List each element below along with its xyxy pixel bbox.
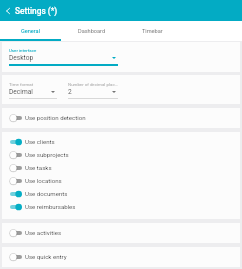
button[interactable]: Use documents xyxy=(2,187,240,200)
staticText: Use quick entry xyxy=(25,253,67,260)
staticText: Use activities xyxy=(25,229,62,236)
staticText: Desktop xyxy=(9,54,34,62)
staticText: Dashboard xyxy=(78,28,106,35)
staticText: Use reimbursables xyxy=(25,203,76,210)
button[interactable]: Use reimbursables xyxy=(2,200,240,213)
staticText: Timebar xyxy=(142,28,163,35)
staticText: Use tasks xyxy=(25,164,52,171)
button[interactable]: Use position detection xyxy=(2,111,240,124)
button[interactable]: Use activities xyxy=(2,226,240,239)
button[interactable]: Use tasks xyxy=(2,161,240,174)
button[interactable]: User interface xyxy=(2,42,118,72)
button[interactable]: Number of decimal plac... xyxy=(61,75,118,104)
staticText: General xyxy=(21,28,41,35)
button[interactable]: Timebar xyxy=(122,21,183,41)
staticText: 2 xyxy=(68,88,72,96)
staticText: Use subprojects xyxy=(25,151,69,158)
button[interactable]: Time format xyxy=(2,75,57,104)
button[interactable]: General xyxy=(0,21,61,41)
staticText: Time format xyxy=(9,82,34,87)
button[interactable]: Use subprojects xyxy=(2,148,240,161)
staticText: Number of decimal plac... xyxy=(68,82,118,87)
button[interactable]: Back xyxy=(0,0,15,21)
button[interactable]: Use clients xyxy=(2,135,240,148)
staticText: Use position detection xyxy=(25,114,86,121)
staticText: Settings (*) xyxy=(15,6,58,16)
staticText: User interface xyxy=(9,48,37,53)
staticText: Use clients xyxy=(25,138,55,145)
button[interactable]: Dashboard xyxy=(61,21,122,41)
staticText: Use locations xyxy=(25,177,62,184)
staticText: Decimal xyxy=(9,88,33,96)
button[interactable]: Use locations xyxy=(2,174,240,187)
button[interactable]: Use quick entry xyxy=(2,250,240,263)
staticText: Use documents xyxy=(25,190,68,197)
